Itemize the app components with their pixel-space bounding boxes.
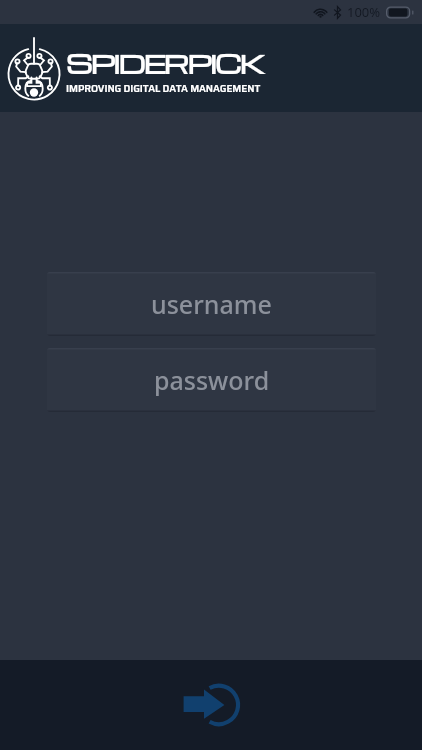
staticText: 100%	[347, 3, 381, 21]
staticText: SPIDERPICK	[66, 45, 263, 81]
button[interactable]: Log in	[173, 667, 249, 743]
button[interactable]: password	[47, 348, 376, 412]
staticText: IMPROVING DIGITAL DATA MANAGEMENT	[66, 81, 261, 97]
staticText: username	[151, 287, 272, 321]
staticText: password	[154, 363, 270, 397]
button[interactable]: username	[47, 272, 376, 336]
